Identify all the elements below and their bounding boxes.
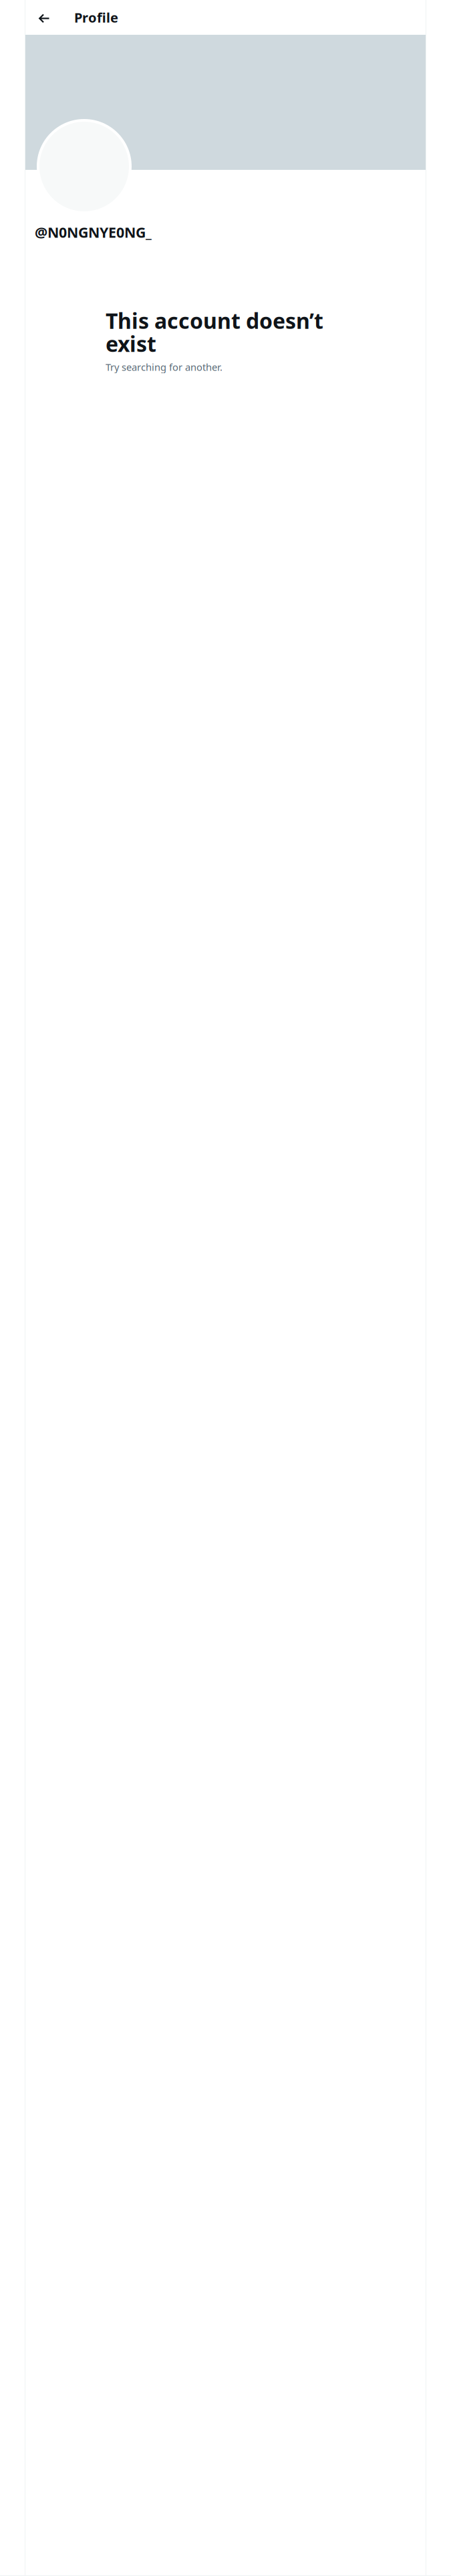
- button[interactable]: Profile: [55, 8, 118, 26]
- button[interactable]: Back: [33, 6, 55, 29]
- staticText: Profile: [74, 8, 118, 26]
- staticText: Try searching for another.: [106, 360, 222, 373]
- button[interactable]: Profile photo: [37, 119, 132, 214]
- staticText: @N0NGNYE0NG_: [35, 223, 152, 242]
- staticText: This account doesn’t exist: [106, 306, 323, 358]
